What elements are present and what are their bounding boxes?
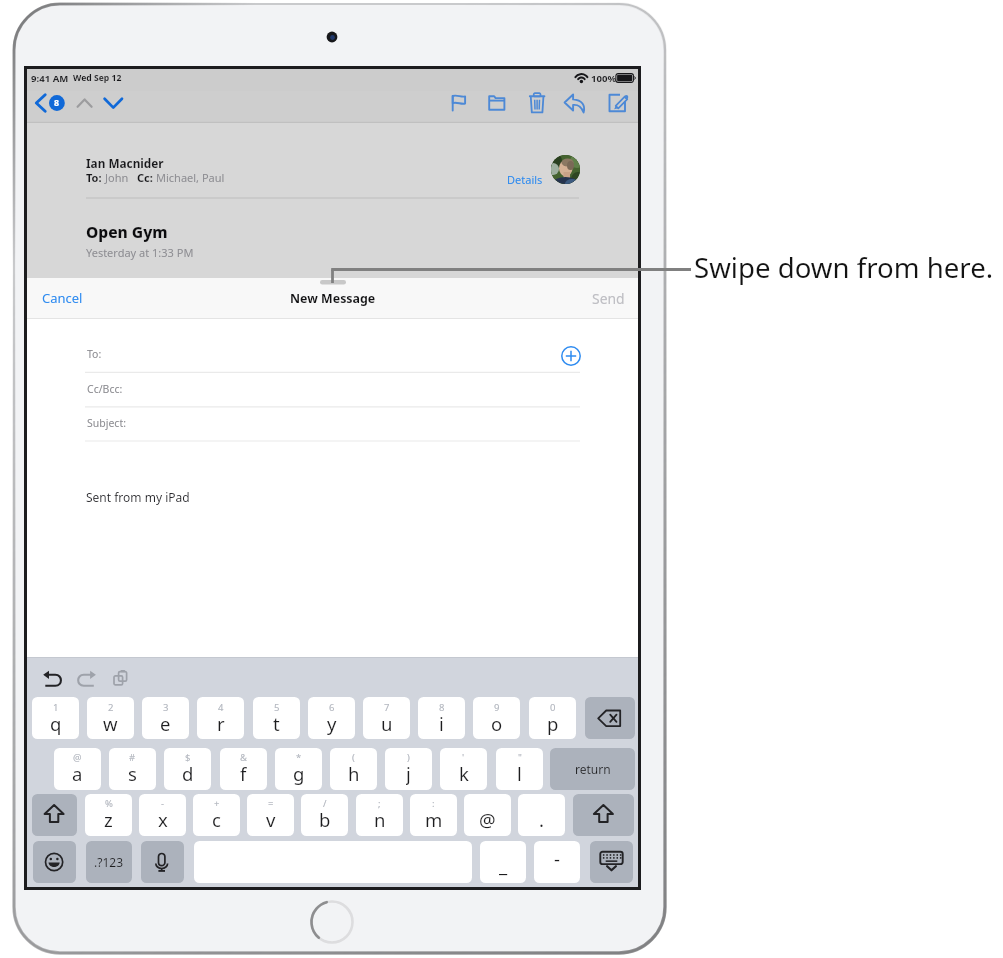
button[interactable]: m xyxy=(410,794,457,836)
staticText: q xyxy=(50,711,62,735)
button[interactable]: Dictation xyxy=(141,841,184,883)
button[interactable]: g xyxy=(275,748,322,790)
button[interactable]: return xyxy=(550,748,635,790)
staticText: f xyxy=(240,761,247,785)
button[interactable]: Hide keyboard xyxy=(590,841,633,883)
staticText: ' xyxy=(462,751,465,764)
staticText: 100% xyxy=(591,72,617,85)
button[interactable]: e xyxy=(142,697,189,739)
button[interactable]: Move to folder xyxy=(485,93,511,121)
button[interactable]: w xyxy=(87,697,134,739)
staticText: _ xyxy=(499,852,508,876)
staticText: * xyxy=(296,751,302,764)
staticText: Cc/Bcc: xyxy=(87,382,123,396)
staticText: ( xyxy=(352,751,355,764)
staticText: Send xyxy=(592,289,625,308)
staticText: 7 xyxy=(384,701,390,714)
button[interactable]: Send xyxy=(584,285,632,311)
staticText: c xyxy=(212,807,221,831)
button[interactable]: Previous message xyxy=(73,93,99,121)
button[interactable]: Compose xyxy=(605,93,631,121)
button[interactable]: r xyxy=(197,697,244,739)
button[interactable]: Back xyxy=(33,93,65,121)
staticText: To: xyxy=(86,170,105,185)
button[interactable]: y xyxy=(308,697,355,739)
button[interactable]: v xyxy=(247,794,294,836)
staticText: .?123 xyxy=(94,854,124,870)
staticText: : xyxy=(432,797,435,810)
button[interactable]: Next message xyxy=(102,93,128,121)
button[interactable]: Redo xyxy=(73,666,101,692)
button[interactable]: Paste xyxy=(107,666,135,692)
button[interactable]: k xyxy=(440,748,487,790)
staticText: return xyxy=(575,761,611,777)
staticText: # xyxy=(129,751,136,764)
button[interactable]: j xyxy=(385,748,432,790)
staticText: w xyxy=(103,711,118,735)
button[interactable]: o xyxy=(473,697,520,739)
staticText: ) xyxy=(407,751,410,764)
staticText: 0 xyxy=(550,701,556,714)
button[interactable]: @ xyxy=(464,794,511,836)
button[interactable]: s xyxy=(109,748,156,790)
button[interactable]: l xyxy=(496,748,543,790)
staticText: " xyxy=(518,751,522,764)
button[interactable]: Shift xyxy=(32,794,77,836)
button[interactable]: c xyxy=(193,794,240,836)
button[interactable]: Cancel xyxy=(30,285,94,311)
button[interactable]: - xyxy=(534,841,580,883)
button[interactable]: Details xyxy=(503,168,546,190)
staticText: 6 xyxy=(329,701,335,714)
staticText: 4 xyxy=(218,701,224,714)
staticText: 5 xyxy=(274,701,280,714)
button[interactable]: Undo xyxy=(39,666,67,692)
button[interactable]: Delete xyxy=(525,93,551,121)
staticText: 9 xyxy=(494,701,500,714)
button[interactable]: _ xyxy=(480,841,526,883)
button[interactable]: .?123 xyxy=(86,841,132,883)
button[interactable]: Add contact xyxy=(561,346,581,366)
button[interactable]: Flag xyxy=(447,93,473,121)
button[interactable]: b xyxy=(301,794,348,836)
staticText: p xyxy=(547,711,559,735)
staticText: $ xyxy=(185,751,191,764)
staticText: k xyxy=(459,761,469,785)
staticText: y xyxy=(327,711,337,735)
staticText: 9:41 AM xyxy=(31,72,69,85)
staticText: New Message xyxy=(290,290,376,307)
staticText: e xyxy=(160,711,171,735)
button[interactable]: t xyxy=(253,697,300,739)
staticText: Subject: xyxy=(87,416,126,430)
button[interactable]: f xyxy=(220,748,267,790)
staticText: t xyxy=(273,711,280,735)
button[interactable]: Emoji xyxy=(33,841,76,883)
button[interactable]: q xyxy=(32,697,79,739)
staticText: h xyxy=(348,761,360,785)
staticText: o xyxy=(491,711,503,735)
button[interactable]: Reply xyxy=(563,93,589,121)
staticText: = xyxy=(268,797,274,810)
button[interactable]: n xyxy=(356,794,403,836)
staticText: Wed Sep 12 xyxy=(73,72,122,84)
staticText: u xyxy=(381,711,393,735)
button[interactable]: p xyxy=(529,697,576,739)
button[interactable]: d xyxy=(164,748,211,790)
staticText: Cc: xyxy=(137,170,156,185)
button[interactable]: u xyxy=(363,697,410,739)
staticText: 8 xyxy=(54,97,60,109)
button[interactable]: a xyxy=(54,748,101,790)
button[interactable]: x xyxy=(139,794,186,836)
button[interactable]: Backspace xyxy=(585,697,635,739)
staticText: v xyxy=(266,807,276,831)
button[interactable]: z xyxy=(85,794,132,836)
button[interactable]: Sender photo xyxy=(551,155,580,184)
button[interactable]: . xyxy=(518,794,565,836)
staticText: 8 xyxy=(439,701,445,714)
staticText: s xyxy=(128,761,137,785)
button[interactable]: h xyxy=(330,748,377,790)
button[interactable]: i xyxy=(418,697,465,739)
staticText: r xyxy=(217,711,225,735)
staticText: @ xyxy=(479,807,496,831)
button[interactable]: Shift xyxy=(573,794,634,836)
